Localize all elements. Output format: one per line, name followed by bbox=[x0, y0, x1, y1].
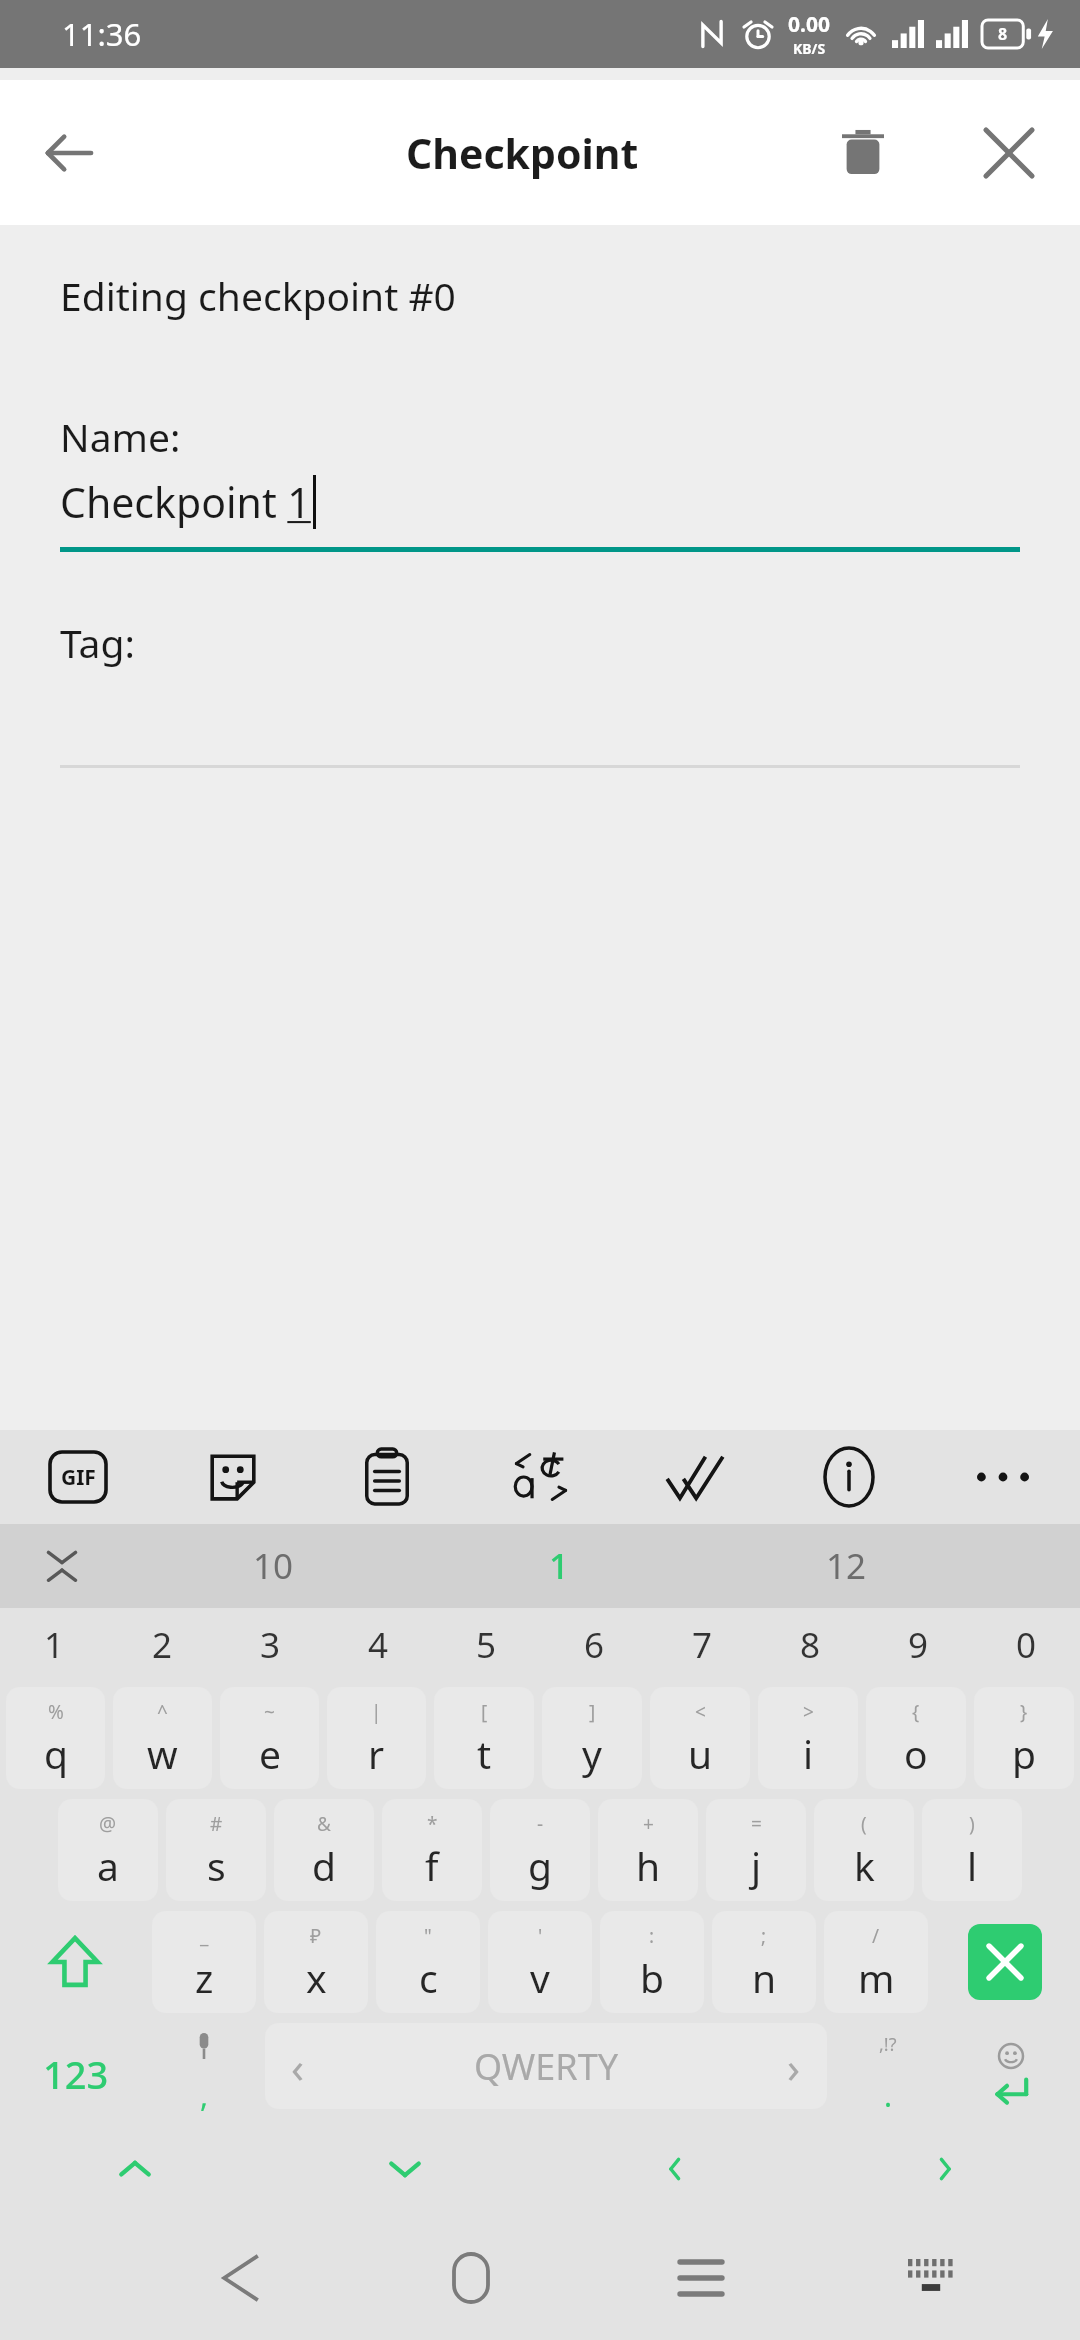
button[interactable]: Info bbox=[772, 1430, 926, 1524]
staticText: ; bbox=[761, 1923, 767, 1949]
staticText: [ bbox=[481, 1699, 488, 1725]
button[interactable]: Move down bbox=[270, 2130, 540, 2208]
staticText: ^ bbox=[157, 1699, 168, 1725]
button[interactable]: 10 bbox=[130, 1524, 416, 1608]
button[interactable]: ~ bbox=[220, 1687, 319, 1789]
button[interactable]: Translate bbox=[464, 1430, 618, 1524]
button[interactable]: _ bbox=[152, 1911, 256, 2013]
button[interactable]: 5 bbox=[432, 1608, 540, 1682]
staticText: Name: bbox=[60, 410, 181, 463]
button[interactable]: Hide keyboard bbox=[816, 2216, 1046, 2340]
staticText: & bbox=[317, 1811, 331, 1837]
button[interactable]: } bbox=[974, 1687, 1074, 1789]
button[interactable]: - bbox=[490, 1799, 590, 1901]
staticText: + bbox=[643, 1811, 654, 1837]
staticText: f bbox=[425, 1839, 439, 1892]
button[interactable]: ; bbox=[712, 1911, 816, 2013]
button[interactable]: | bbox=[327, 1687, 426, 1789]
staticText: a bbox=[97, 1839, 119, 1892]
staticText: = bbox=[751, 1811, 762, 1837]
button[interactable]: Voice input bbox=[147, 2023, 261, 2125]
button[interactable]: : bbox=[600, 1911, 704, 2013]
button[interactable]: ( bbox=[814, 1799, 914, 1901]
button[interactable]: Back bbox=[126, 2216, 356, 2340]
button[interactable]: % bbox=[6, 1687, 105, 1789]
button[interactable]: @ bbox=[58, 1799, 158, 1901]
button[interactable]: 12 bbox=[703, 1524, 990, 1608]
button[interactable]: Recent apps bbox=[586, 2216, 816, 2340]
button[interactable]: Backspace bbox=[968, 1924, 1042, 2000]
button[interactable]: ' bbox=[488, 1911, 592, 2013]
button[interactable]: 4 bbox=[324, 1608, 432, 1682]
button[interactable]: ) bbox=[922, 1799, 1022, 1901]
staticText: _ bbox=[200, 1923, 209, 1949]
staticText: 1 bbox=[549, 1542, 570, 1590]
button[interactable]: * bbox=[382, 1799, 482, 1901]
button[interactable]: 3 bbox=[216, 1608, 324, 1682]
button[interactable]: 6 bbox=[540, 1608, 648, 1682]
button[interactable]: Move up bbox=[0, 2130, 270, 2208]
button[interactable]: ] bbox=[542, 1687, 642, 1789]
button[interactable]: Back bbox=[24, 108, 114, 198]
staticText: / bbox=[872, 1923, 880, 1949]
button[interactable]: ,!? bbox=[831, 2023, 945, 2125]
button[interactable]: > bbox=[758, 1687, 858, 1789]
button[interactable]: Close bbox=[964, 108, 1054, 198]
staticText: ] bbox=[589, 1699, 596, 1725]
button[interactable]: < bbox=[650, 1687, 750, 1789]
button[interactable]: 2 bbox=[108, 1608, 216, 1682]
staticText: | bbox=[371, 1699, 382, 1725]
staticText: h bbox=[636, 1839, 661, 1892]
button[interactable]: = bbox=[706, 1799, 806, 1901]
button[interactable]: Stickers bbox=[155, 1430, 310, 1524]
button[interactable]: GIF bbox=[0, 1430, 155, 1524]
staticText: k bbox=[854, 1839, 875, 1892]
button[interactable]: Delete checkpoint bbox=[818, 108, 908, 198]
button[interactable]: Move right bbox=[810, 2130, 1080, 2208]
button[interactable]: & bbox=[274, 1799, 374, 1901]
button[interactable]: [ bbox=[434, 1687, 534, 1789]
staticText: , bbox=[200, 2075, 209, 2116]
staticText: j bbox=[751, 1839, 762, 1892]
staticText: : bbox=[649, 1923, 655, 1949]
staticText: 2 bbox=[152, 1621, 173, 1669]
button[interactable]: " bbox=[376, 1911, 480, 2013]
button[interactable]: 0 bbox=[972, 1608, 1080, 1682]
button[interactable]: Move left bbox=[540, 2130, 810, 2208]
staticText: t bbox=[477, 1727, 492, 1780]
staticText: < bbox=[695, 1699, 706, 1725]
button[interactable]: ^ bbox=[113, 1687, 212, 1789]
button[interactable]: Clipboard bbox=[310, 1430, 464, 1524]
button[interactable]: # bbox=[166, 1799, 266, 1901]
staticText: Checkpoint 1 bbox=[60, 474, 311, 530]
staticText: r bbox=[368, 1727, 385, 1780]
staticText: GIF bbox=[61, 1463, 96, 1492]
button[interactable]: Home bbox=[356, 2216, 586, 2340]
button[interactable]: + bbox=[598, 1799, 698, 1901]
button[interactable]: Shift bbox=[2, 1911, 148, 2013]
button[interactable]: Enter bbox=[945, 2023, 1076, 2125]
button[interactable]: Spell check bbox=[618, 1430, 772, 1524]
button[interactable]: / bbox=[824, 1911, 928, 2013]
button[interactable]: Expand bbox=[24, 1528, 100, 1604]
button[interactable]: 7 bbox=[648, 1608, 756, 1682]
staticText: 0 bbox=[1016, 1621, 1037, 1669]
button[interactable]: { bbox=[866, 1687, 966, 1789]
button[interactable]: 1 bbox=[0, 1608, 108, 1682]
staticText: 9 bbox=[908, 1621, 929, 1669]
button[interactable]: More bbox=[926, 1430, 1080, 1524]
staticText: " bbox=[424, 1923, 432, 1949]
button[interactable]: 8 bbox=[756, 1608, 864, 1682]
button[interactable]: 123 bbox=[4, 2023, 147, 2125]
button[interactable]: 9 bbox=[864, 1608, 972, 1682]
button[interactable]: 1 bbox=[416, 1524, 703, 1608]
staticText: } bbox=[1020, 1699, 1028, 1725]
staticText: ( bbox=[861, 1811, 867, 1837]
staticText: . bbox=[884, 2075, 893, 2116]
button[interactable]: ₽ bbox=[264, 1911, 368, 2013]
staticText: 6 bbox=[584, 1621, 605, 1669]
staticText: * bbox=[427, 1811, 438, 1837]
button[interactable]: Space bbox=[265, 2023, 827, 2109]
